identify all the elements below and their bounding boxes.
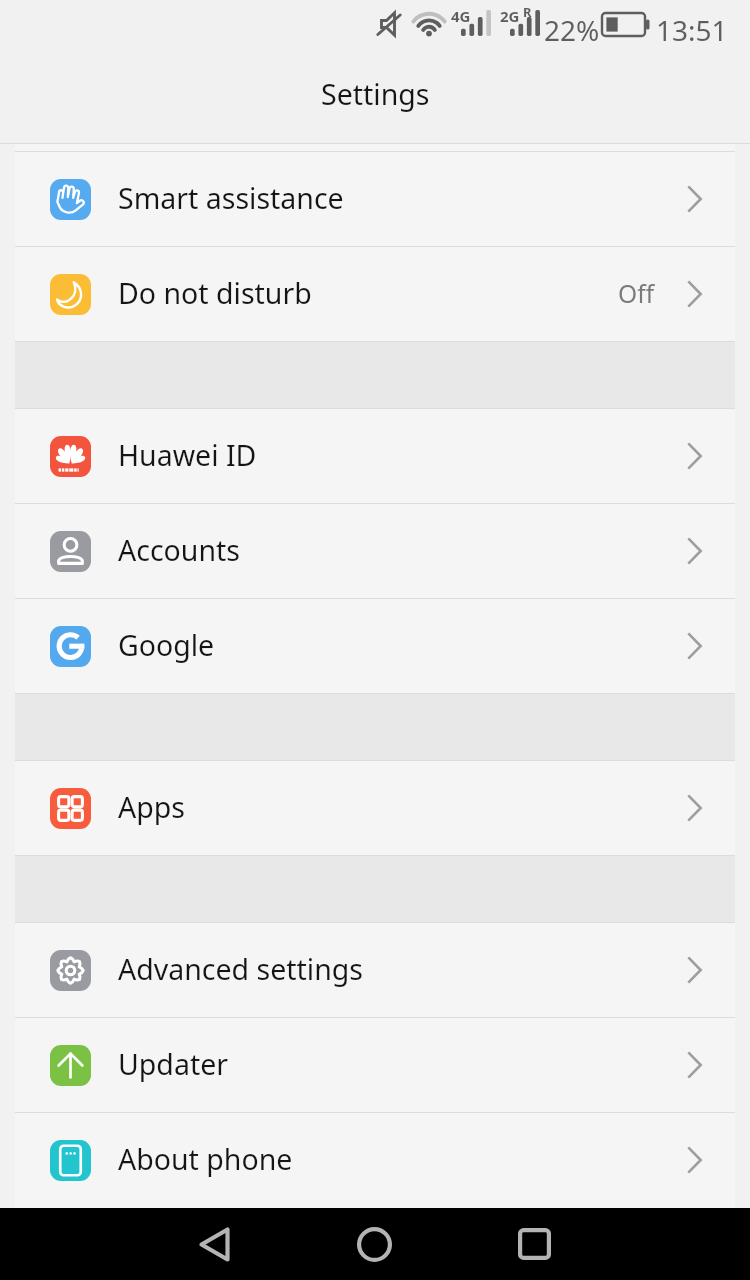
button[interactable]: Back — [174, 1208, 254, 1280]
staticText: Settings — [321, 75, 430, 114]
staticText: 2G — [500, 6, 520, 26]
staticText: About phone — [118, 1140, 293, 1179]
staticText: Do not disturb — [118, 274, 312, 313]
button[interactable]: Apps — [15, 761, 735, 855]
button[interactable]: Do not disturb — [15, 247, 735, 341]
staticText: R — [523, 3, 532, 21]
button[interactable]: Smart assistance — [15, 152, 735, 246]
button[interactable]: Advanced settings — [15, 923, 735, 1017]
button[interactable]: About phone — [15, 1113, 735, 1207]
staticText: Huawei ID — [118, 436, 257, 475]
staticText: Smart assistance — [118, 179, 344, 218]
staticText: 22% — [544, 11, 600, 49]
button[interactable]: Updater — [15, 1018, 735, 1112]
staticText: Advanced settings — [118, 950, 363, 989]
staticText: Google — [118, 626, 215, 665]
staticText: 4G — [451, 6, 471, 26]
button[interactable]: Recents — [494, 1208, 574, 1280]
button[interactable]: Huawei ID — [15, 409, 735, 503]
staticText: 13:51 — [656, 11, 728, 49]
staticText: Off — [618, 277, 654, 310]
button[interactable]: Accounts — [15, 504, 735, 598]
button[interactable]: Google — [15, 599, 735, 693]
staticText: Updater — [118, 1045, 229, 1084]
staticText: Apps — [118, 788, 185, 827]
button[interactable]: Home — [334, 1208, 414, 1280]
staticText: Accounts — [118, 531, 240, 570]
